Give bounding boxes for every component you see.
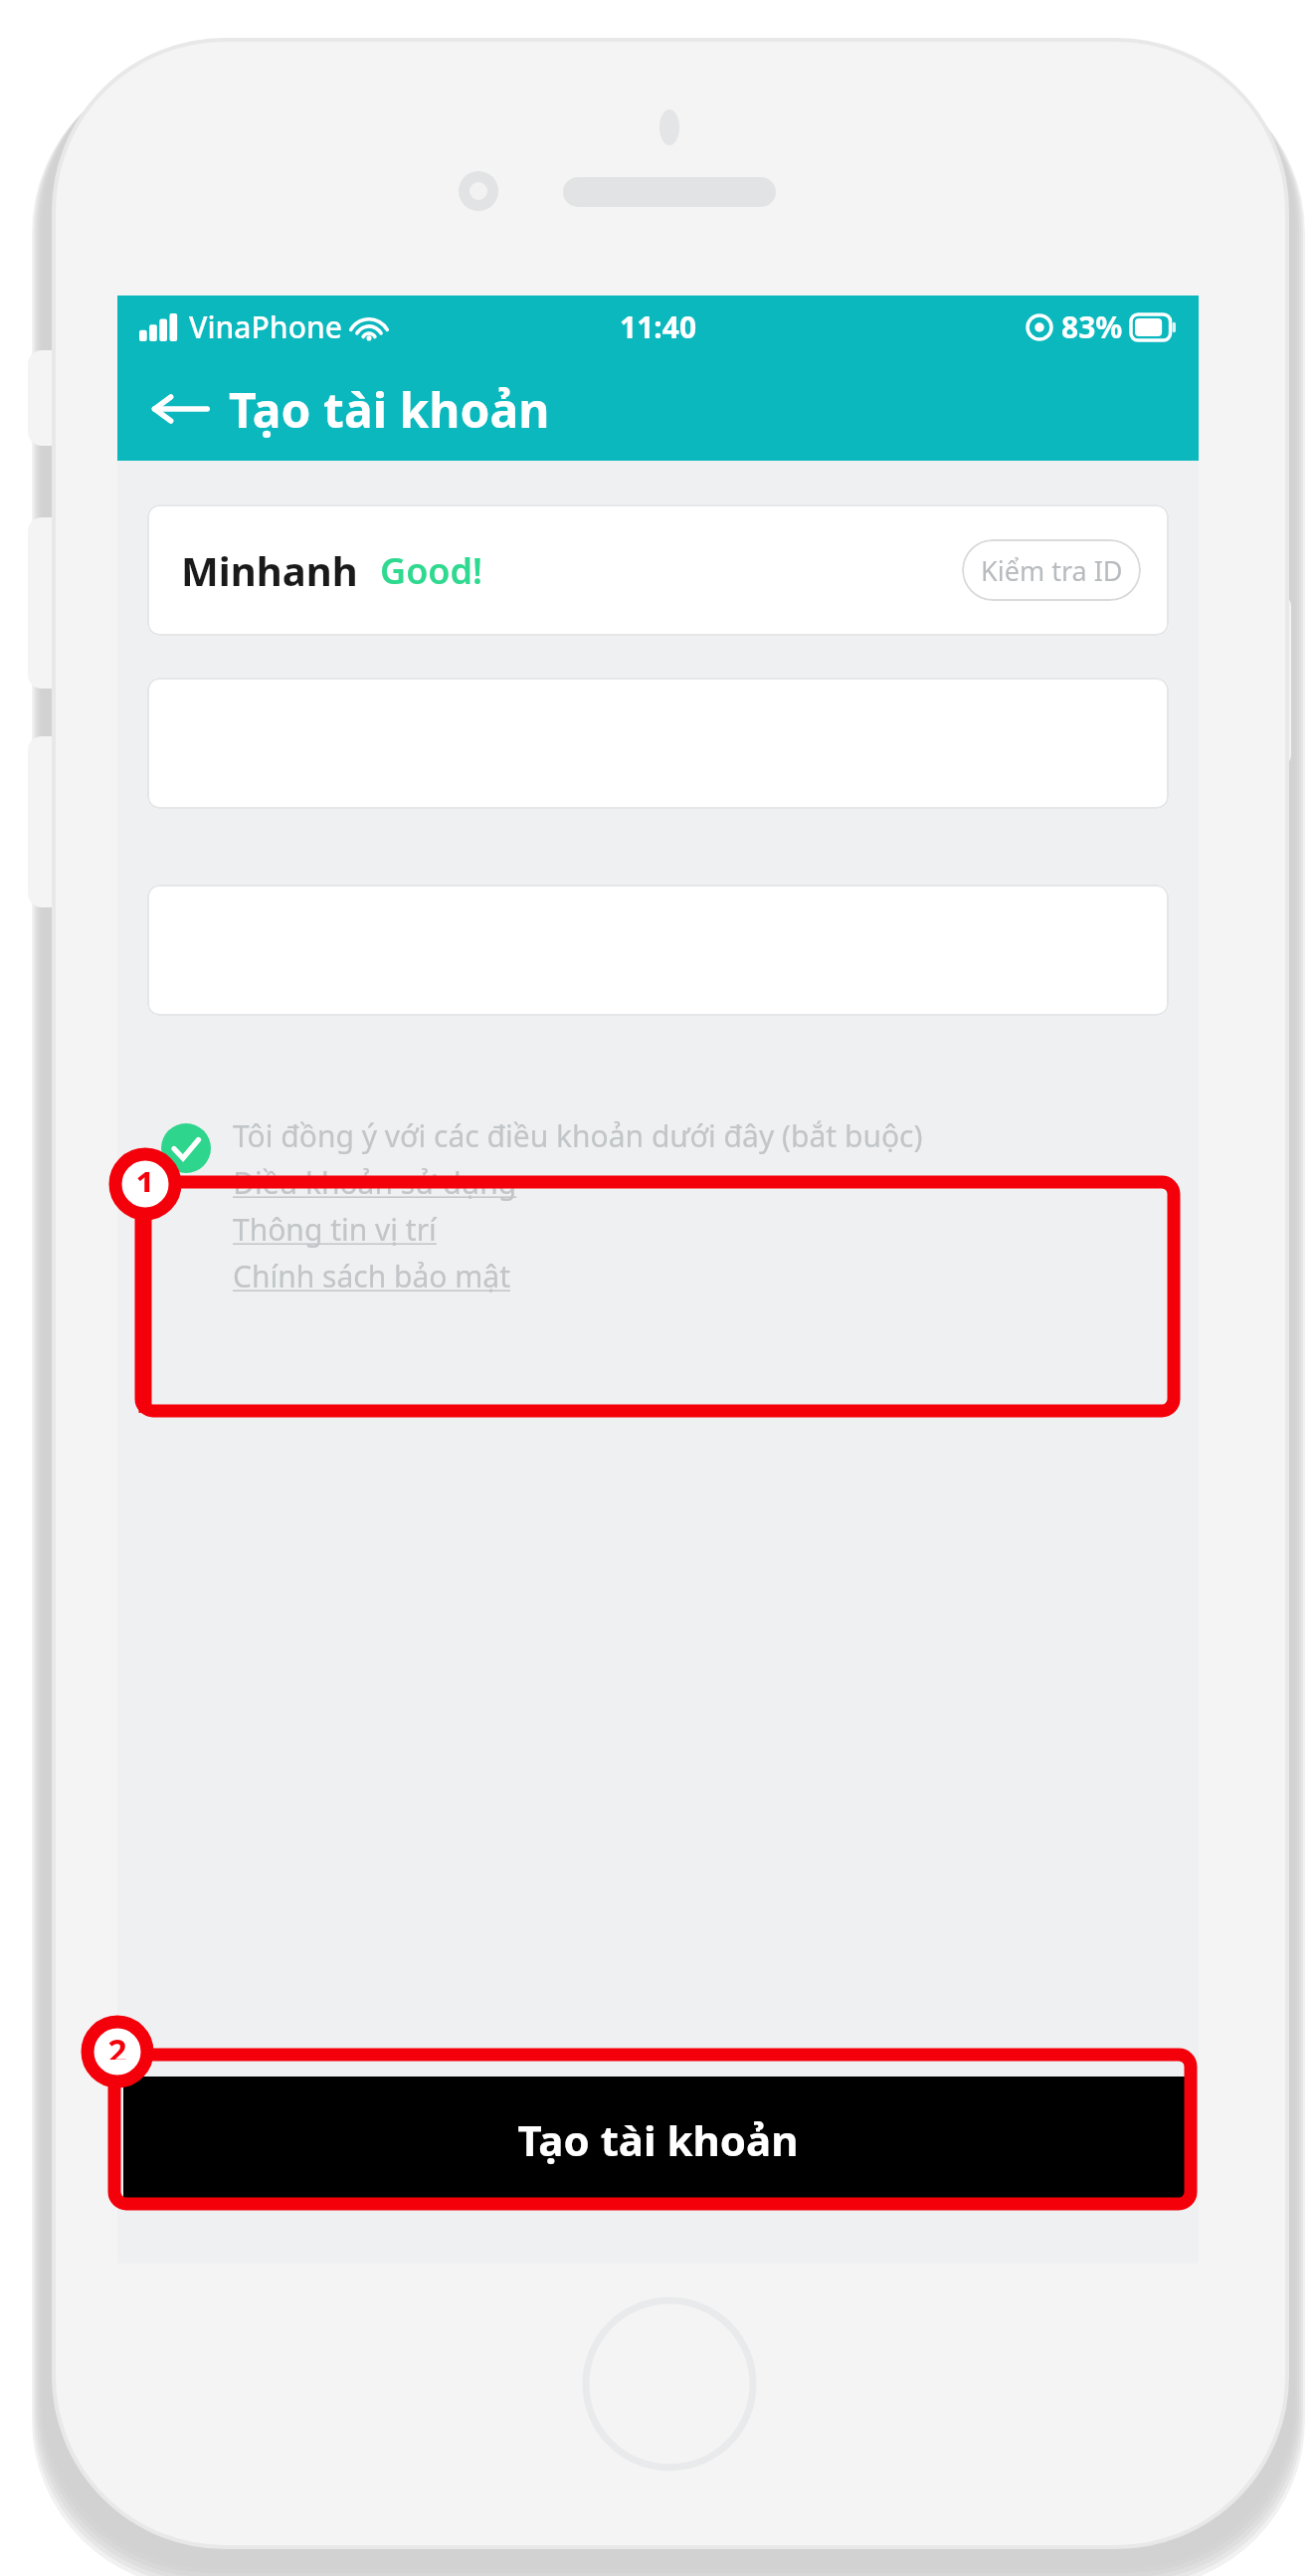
- staticText: Kiểm tra ID: [981, 552, 1123, 589]
- staticText: 11:40: [620, 306, 697, 347]
- button[interactable]: Tạo tài khoản: [123, 2077, 1193, 2202]
- button[interactable]: [147, 885, 1169, 1016]
- button[interactable]: Tôi đồng ý với các điều khoản dưới đây (…: [161, 1115, 1169, 1296]
- staticText: Thông tin vị trí: [233, 1209, 437, 1250]
- staticText: Tôi đồng ý với các điều khoản dưới đây (…: [233, 1115, 923, 1156]
- staticText: Tạo tài khoản: [229, 377, 550, 442]
- staticText: 1: [135, 1160, 155, 1192]
- button[interactable]: Minhanh: [147, 504, 1169, 636]
- button[interactable]: Điều khoản sử dụng: [233, 1162, 517, 1203]
- button[interactable]: Thông tin vị trí: [233, 1209, 437, 1250]
- button[interactable]: Back: [147, 376, 213, 442]
- staticText: Minhanh: [181, 543, 358, 597]
- staticText: Tạo tài khoản: [517, 2111, 799, 2168]
- staticText: Điều khoản sử dụng: [233, 1162, 517, 1203]
- staticText: Good!: [380, 546, 483, 595]
- staticText: 2: [107, 2028, 127, 2060]
- staticText: 83%: [1061, 306, 1123, 347]
- button[interactable]: [147, 678, 1169, 809]
- button[interactable]: Kiểm tra ID: [962, 539, 1141, 601]
- button[interactable]: Chính sách bảo mật: [233, 1256, 510, 1296]
- staticText: VinaPhone: [189, 306, 342, 347]
- staticText: Chính sách bảo mật: [233, 1256, 510, 1296]
